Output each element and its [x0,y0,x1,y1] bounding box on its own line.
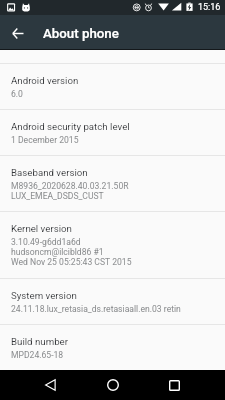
button[interactable]: System version [0,279,225,324]
staticText: hudsoncm@ilcibld86 #1 [11,247,104,257]
staticText: Baseband version [11,167,88,178]
button[interactable]: Back [32,370,69,400]
staticText: Kernel version [11,223,72,234]
staticText: Android security patch level [11,121,130,132]
staticText: 1 December 2015 [11,135,79,145]
button[interactable]: Recent apps [156,370,193,400]
staticText: 24.11.18.lux_retasia_ds.retasiaall.en.03… [11,304,181,314]
staticText: LUX_EMEA_DSDS_CUST [11,191,104,201]
staticText: 15:16 [198,2,221,13]
staticText: Android version [11,75,79,86]
button[interactable]: Android security patch level [0,110,225,155]
staticText: Build number [11,336,68,347]
staticText: M8936_2020628.40.03.21.50R [11,181,129,191]
staticText: 6.0 [11,89,23,99]
staticText: System version [11,290,77,301]
button[interactable]: Kernel version [0,212,225,278]
button[interactable]: Navigate up [0,18,35,49]
staticText: MPD24.65-18 [11,350,64,360]
button[interactable]: Baseband version [0,156,225,211]
button[interactable]: Home [94,370,131,400]
button[interactable]: Build number [0,325,225,370]
staticText: About phone [43,26,119,42]
staticText: Wed Nov 25 05:25:43 CST 2015 [11,257,132,267]
staticText: 3.10.49-g6dd1a6d [11,237,81,247]
button[interactable]: Android version [0,64,225,109]
